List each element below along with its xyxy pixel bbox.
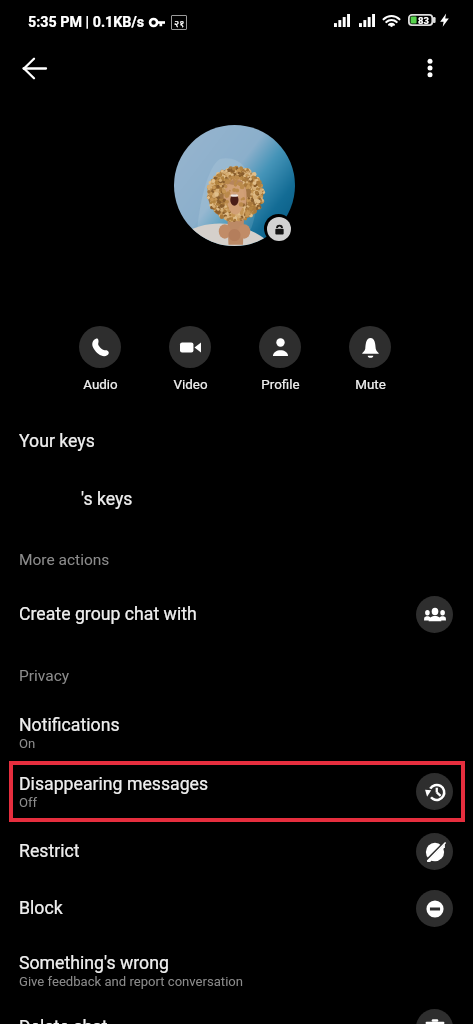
staticText: More actions [19, 551, 110, 569]
button[interactable]: Delete chat [0, 999, 473, 1024]
button[interactable]: Your keys [0, 413, 473, 470]
button[interactable]: Something's wrong [0, 941, 473, 1001]
staticText: Block [19, 898, 63, 919]
staticText: Disappearing messages [19, 774, 209, 795]
staticText: Video [173, 377, 208, 393]
staticText: Privacy [19, 667, 70, 685]
staticText: Off [19, 795, 38, 810]
staticText: 5:35 PM | 0.1KB/s [28, 14, 145, 31]
staticText: Profile [261, 377, 300, 393]
staticText: On [19, 736, 36, 751]
button[interactable]: Create group chat with [0, 586, 473, 643]
button[interactable]: Profile photo [174, 125, 295, 246]
staticText: Your keys [19, 431, 95, 452]
other: Block [416, 890, 453, 927]
staticText: Something's wrong [19, 953, 169, 974]
button[interactable]: Restrict [0, 823, 473, 880]
staticText: 's keys [81, 489, 133, 510]
button[interactable]: More options [407, 45, 453, 91]
other: Delete chat [416, 1009, 453, 1024]
button[interactable]: Profile [245, 326, 315, 393]
other: Create group chat with [416, 596, 453, 633]
staticText: Delete chat [19, 1017, 108, 1024]
button[interactable]: 's keys [0, 471, 473, 528]
button[interactable]: Video [155, 326, 225, 393]
button[interactable]: Navigate up [11, 45, 57, 91]
other: Restrict [416, 833, 453, 870]
staticText: Audio [83, 377, 118, 393]
staticText: Restrict [19, 841, 80, 862]
button[interactable]: Mute [335, 326, 405, 393]
staticText: Give feedback and report conversation [19, 974, 244, 989]
staticText: २१ [174, 16, 185, 30]
button[interactable]: Audio [65, 326, 135, 393]
other: Disappearing messages [416, 773, 453, 810]
button[interactable]: Block [0, 880, 473, 937]
staticText: Create group chat with [19, 604, 197, 625]
staticText: Mute [355, 377, 386, 393]
staticText: Notifications [19, 715, 120, 736]
button[interactable]: Notifications [0, 704, 473, 762]
button[interactable]: Disappearing messages [0, 761, 473, 822]
staticText: 83 [418, 15, 429, 26]
